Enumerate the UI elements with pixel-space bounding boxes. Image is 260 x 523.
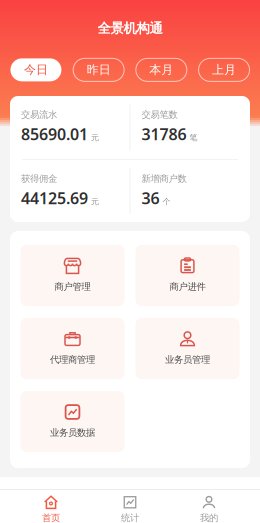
staticText: 代理商管理 — [50, 354, 95, 365]
staticText: 本月 — [149, 62, 173, 77]
staticText: 44125.69 — [21, 187, 88, 209]
button[interactable]: 昨日 — [73, 58, 124, 81]
staticText: 31786 — [141, 123, 186, 145]
button[interactable]: 上月 — [199, 58, 250, 81]
staticText: 业务员数据 — [50, 427, 95, 438]
staticText: 交易笔数 — [141, 109, 177, 120]
button[interactable]: 商户管理 — [20, 245, 124, 306]
staticText: 首页 — [42, 512, 60, 523]
button[interactable]: 商户进件 — [135, 245, 239, 306]
staticText: 元 — [91, 133, 99, 142]
staticText: 今日 — [24, 62, 48, 77]
button[interactable]: 业务员管理 — [135, 318, 239, 379]
staticText: 85690.01 — [21, 123, 88, 145]
staticText: 昨日 — [87, 62, 111, 77]
staticText: 上月 — [212, 62, 236, 77]
staticText: 笔 — [189, 133, 197, 142]
staticText: 统计 — [121, 512, 139, 523]
staticText: 商户进件 — [169, 281, 205, 292]
staticText: 交易流水 — [21, 109, 57, 120]
button[interactable]: 我的 — [169, 490, 248, 523]
button[interactable]: 代理商管理 — [20, 318, 124, 379]
button[interactable]: 业务员数据 — [20, 391, 124, 452]
staticText: 获得佣金 — [21, 173, 57, 184]
staticText: 商户管理 — [54, 281, 90, 292]
button[interactable]: 统计 — [90, 490, 169, 523]
staticText: 新增商户数 — [141, 173, 186, 184]
staticText: 业务员管理 — [165, 354, 210, 365]
button[interactable]: 首页 — [11, 490, 90, 523]
staticText: 元 — [91, 197, 99, 206]
staticText: 全景机构通 — [97, 20, 162, 36]
staticText: 我的 — [200, 512, 218, 523]
button[interactable]: 今日 — [10, 58, 61, 81]
staticText: 36 — [141, 187, 159, 209]
staticText: 个 — [162, 197, 170, 206]
button[interactable]: 本月 — [136, 58, 187, 81]
